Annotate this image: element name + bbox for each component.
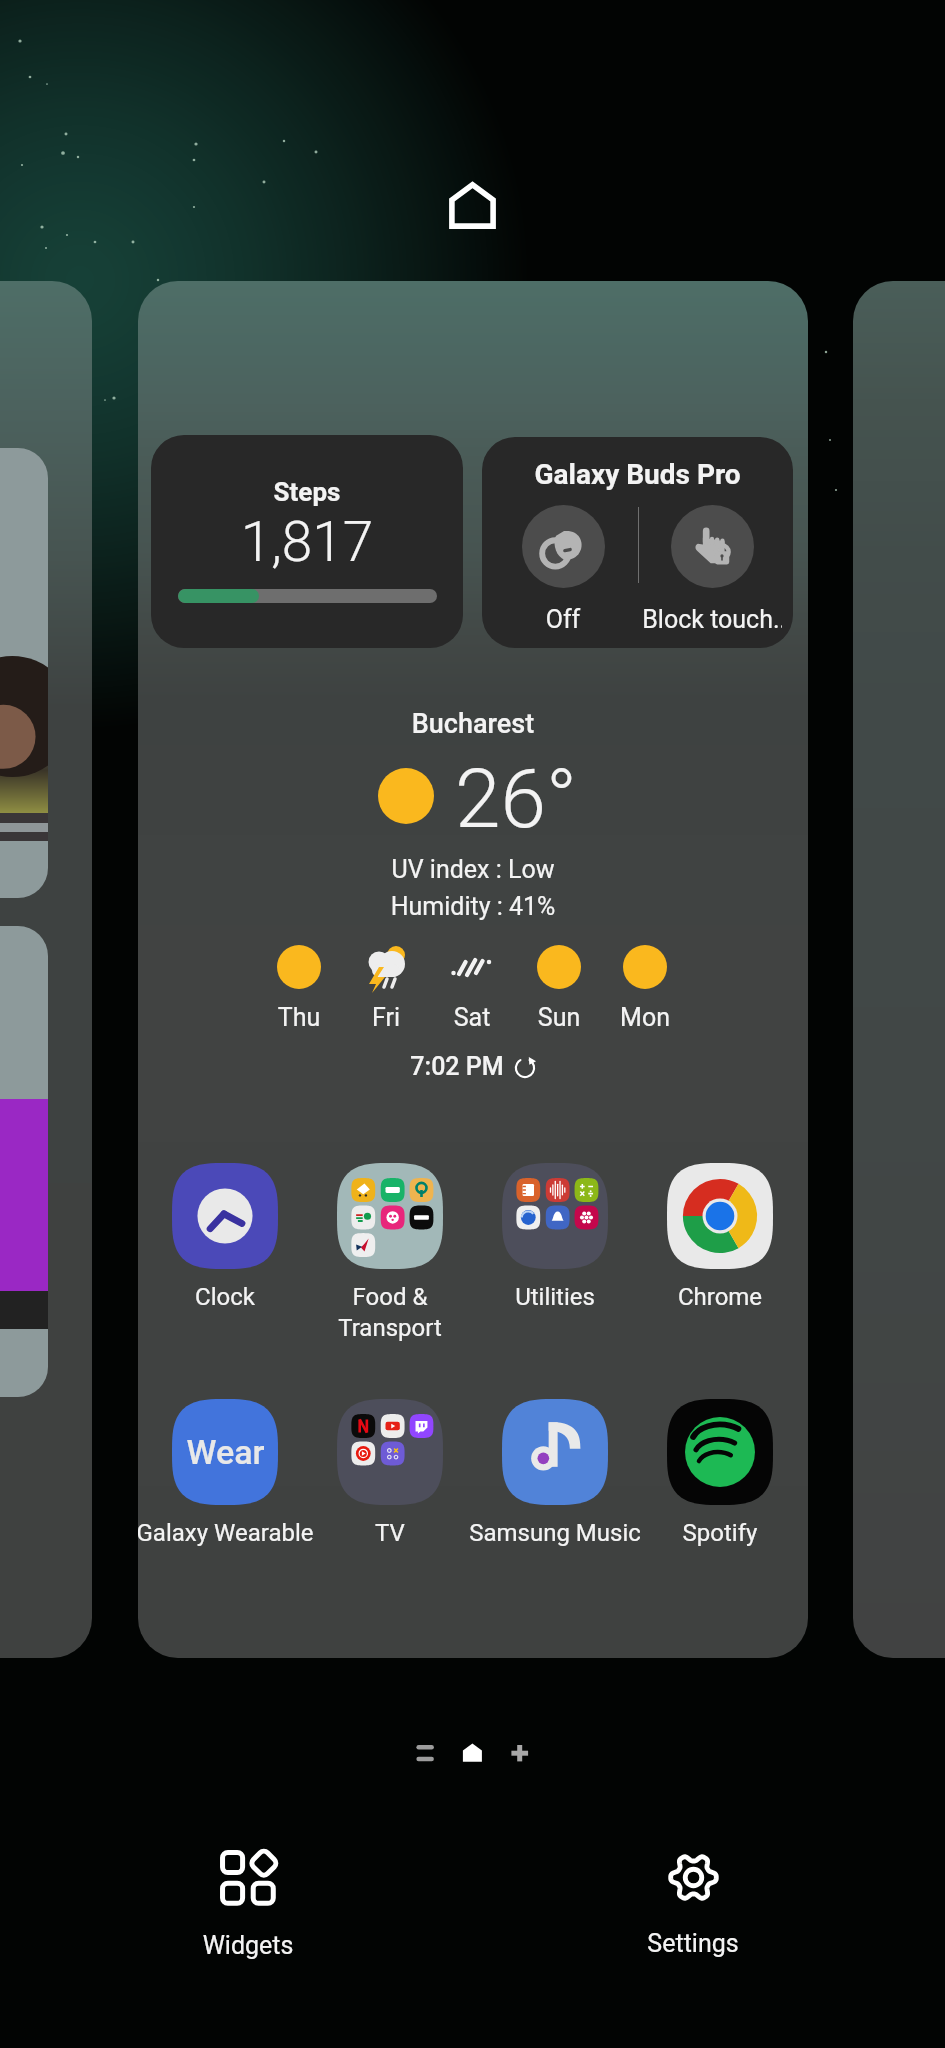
button[interactable] xyxy=(0,281,92,1658)
button[interactable]: Block touch... xyxy=(642,505,782,634)
staticText: UV index : Low xyxy=(138,855,808,884)
button[interactable]: Clock xyxy=(138,1163,335,1311)
button[interactable]: Chrome xyxy=(610,1163,808,1311)
staticText: Mon xyxy=(595,1003,695,1032)
button[interactable] xyxy=(853,281,945,1658)
button[interactable]: Samsung Music xyxy=(445,1399,665,1547)
button[interactable]: Settings xyxy=(543,1839,843,1968)
staticText: Utilities xyxy=(445,1283,665,1311)
staticText: Food & Transport xyxy=(280,1283,500,1342)
button[interactable]: Home screen xyxy=(446,179,499,232)
staticText: Spotify xyxy=(610,1519,808,1547)
staticText: Bucharest xyxy=(138,708,808,740)
staticText: Wear xyxy=(186,1432,265,1472)
staticText: Off xyxy=(493,605,633,634)
button[interactable]: Food & Transport xyxy=(280,1163,500,1342)
staticText: Samsung Music xyxy=(445,1519,665,1547)
staticText: Chrome xyxy=(610,1283,808,1311)
button[interactable]: Current home page xyxy=(452,1740,492,1780)
button[interactable]: Utilities xyxy=(445,1163,665,1311)
staticText: 26° xyxy=(455,751,577,847)
staticText: Settings xyxy=(543,1929,843,1958)
staticText: 1,817 xyxy=(151,510,463,574)
button[interactable]: Add page xyxy=(500,1740,540,1780)
staticText: 7:02 PM xyxy=(410,1052,504,1081)
button[interactable]: All pages xyxy=(405,1740,445,1780)
staticText: Widgets xyxy=(98,1931,398,1960)
button[interactable]: Bucharest xyxy=(138,696,808,1096)
button[interactable]: Galaxy Buds Pro xyxy=(482,437,793,648)
button[interactable]: Off xyxy=(493,505,633,634)
button[interactable]: TV xyxy=(280,1399,500,1547)
staticText: Galaxy Wearable xyxy=(138,1519,335,1547)
button[interactable]: Wear xyxy=(138,1399,335,1547)
staticText: TV xyxy=(280,1519,500,1547)
staticText: Sat xyxy=(422,1003,522,1032)
button[interactable]: Spotify xyxy=(610,1399,808,1547)
staticText: Fri xyxy=(336,1003,436,1032)
staticText: Block touch... xyxy=(642,605,782,634)
staticText: Galaxy Buds Pro xyxy=(482,458,793,491)
button[interactable]: Steps xyxy=(138,281,808,1658)
button[interactable]: Widgets xyxy=(98,1839,398,1970)
staticText: Sun xyxy=(509,1003,609,1032)
staticText: Humidity : 41% xyxy=(138,892,808,921)
staticText: Thu xyxy=(249,1003,349,1032)
staticText: Clock xyxy=(138,1283,335,1311)
button[interactable]: Steps xyxy=(151,435,463,648)
staticText: Steps xyxy=(151,477,463,507)
